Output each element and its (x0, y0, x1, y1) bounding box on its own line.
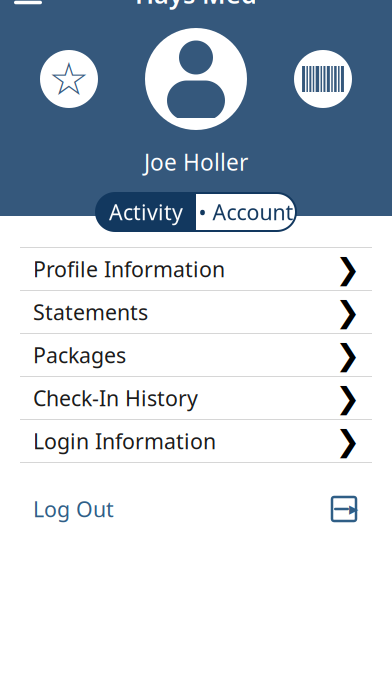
button[interactable]: Favorites (40, 50, 98, 108)
staticText: Joe Holler (144, 147, 248, 177)
staticText: Log Out (33, 495, 114, 523)
staticText: Check-In History (33, 384, 198, 412)
staticText: • Account (198, 198, 293, 226)
staticText: Login Information (33, 427, 216, 455)
button[interactable]: Log Out (0, 487, 392, 531)
button[interactable]: Packages (0, 334, 392, 377)
staticText: Packages (33, 341, 126, 369)
button[interactable]: Profile Information (0, 248, 392, 291)
button[interactable]: • Account (196, 193, 296, 231)
staticText: ❯ (335, 252, 360, 286)
button[interactable]: Check-In History (0, 377, 392, 420)
button[interactable]: Activity (96, 193, 196, 231)
staticText: ❯ (335, 295, 360, 329)
staticText: Profile Information (33, 255, 225, 283)
staticText: Activity (109, 198, 183, 226)
button[interactable]: Menu (6, 0, 50, 16)
button[interactable]: Statements (0, 291, 392, 334)
staticText: ☆ (48, 53, 89, 105)
staticText: ❯ (335, 381, 360, 415)
staticText: Statements (33, 298, 148, 326)
staticText: ▶ (349, 502, 358, 516)
staticText: Hays Med (135, 0, 257, 11)
staticText: ❯ (335, 424, 360, 458)
button[interactable]: Barcode (294, 50, 352, 108)
staticText: ★ (48, 53, 89, 105)
button[interactable]: Profile photo (145, 28, 247, 130)
staticText: ❯ (335, 338, 360, 372)
button[interactable]: Login Information (0, 420, 392, 463)
